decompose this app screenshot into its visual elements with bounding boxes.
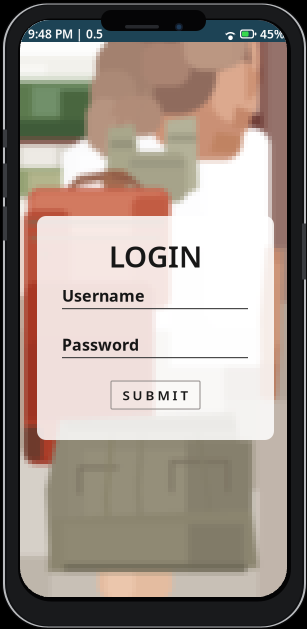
staticText: Password — [62, 334, 139, 355]
staticText: S U B M I T — [122, 386, 188, 404]
staticText: 45% — [260, 26, 285, 42]
staticText: 9:48 PM | 0.5 — [28, 26, 103, 42]
staticText: LOGIN — [109, 236, 202, 275]
staticText: Username — [62, 285, 145, 306]
button[interactable]: S U B M I T — [111, 381, 200, 409]
